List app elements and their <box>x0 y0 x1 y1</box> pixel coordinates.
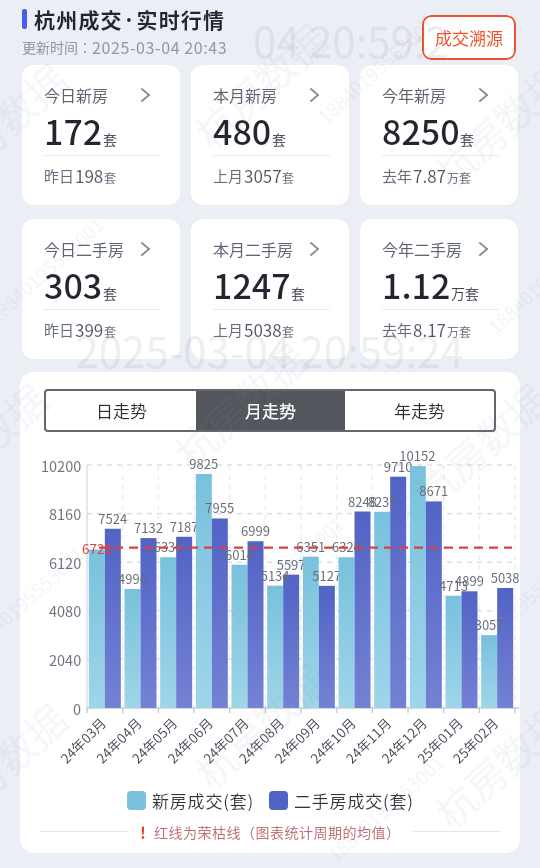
staticText: 套 <box>282 169 295 186</box>
staticText: 8.17 <box>413 317 447 342</box>
staticText: 172 <box>44 106 103 155</box>
button[interactable]: 今年新房 <box>360 65 518 205</box>
staticText: 万套 <box>447 323 472 340</box>
staticText: 月走势 <box>245 398 296 423</box>
staticText: 成交溯源 <box>435 25 503 50</box>
staticText: 3057 <box>244 163 282 188</box>
staticText: 今年新房 <box>382 83 447 106</box>
staticText: 万套 <box>447 169 472 186</box>
staticText: 套 <box>272 129 286 149</box>
staticText: 昨日 <box>44 165 75 187</box>
staticText: 480 <box>213 106 272 155</box>
button[interactable]: 本月二手房 <box>191 219 349 359</box>
button[interactable]: 成交溯源 <box>422 15 516 60</box>
staticText: 1247 <box>213 260 291 309</box>
staticText: 二手房成交(套) <box>294 788 414 813</box>
button[interactable]: 今年二手房 <box>360 219 518 359</box>
staticText: 套 <box>460 129 474 149</box>
button[interactable]: 本月新房 <box>191 65 349 205</box>
staticText: 去年 <box>382 165 413 187</box>
staticText: 昨日 <box>44 319 75 341</box>
staticText: 去年 <box>382 319 413 341</box>
staticText: 今年二手房 <box>382 237 463 260</box>
staticText: 更新时间： <box>22 37 92 57</box>
staticText: 套 <box>104 169 117 186</box>
staticText: 今日新房 <box>44 83 109 106</box>
staticText: 杭州成交·实时行情 <box>34 4 226 34</box>
staticText: 套 <box>291 283 305 303</box>
staticText: 399 <box>75 317 104 342</box>
staticText: 上月 <box>213 319 244 341</box>
staticText: 上月 <box>213 165 244 187</box>
button[interactable]: 年走势 <box>345 391 494 430</box>
staticText: 本月二手房 <box>213 237 294 260</box>
staticText: 红线为荣枯线（图表统计周期的均值） <box>154 822 401 842</box>
button[interactable]: 今日新房 <box>22 65 180 205</box>
staticText: 新房成交(套) <box>152 788 255 813</box>
staticText: 7.87 <box>413 163 447 188</box>
staticText: ! <box>140 820 146 843</box>
staticText: 套 <box>103 129 117 149</box>
staticText: 套 <box>103 283 117 303</box>
staticText: 今日二手房 <box>44 237 125 260</box>
staticText: 1.12 <box>382 260 451 309</box>
staticText: 198 <box>75 163 104 188</box>
staticText: 8250 <box>382 106 460 155</box>
button[interactable]: 月走势 <box>196 391 345 430</box>
staticText: 5038 <box>244 317 282 342</box>
staticText: 303 <box>44 260 103 309</box>
staticText: 2025-03-04 20:43 <box>92 35 228 58</box>
staticText: 套 <box>282 323 295 340</box>
staticText: 日走势 <box>96 398 147 423</box>
button[interactable]: 日走势 <box>46 391 196 430</box>
staticText: 套 <box>104 323 117 340</box>
staticText: 本月新房 <box>213 83 278 106</box>
staticText: 万套 <box>451 283 479 303</box>
staticText: 年走势 <box>394 398 445 423</box>
button[interactable]: 今日二手房 <box>22 219 180 359</box>
